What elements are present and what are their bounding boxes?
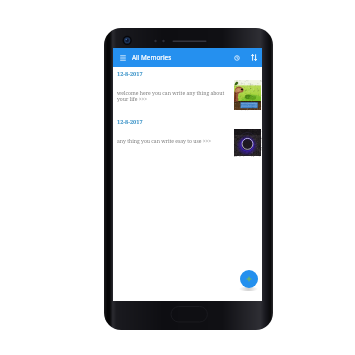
staticText: 12-8-2017 [117,118,143,126]
button[interactable]: Menu [118,53,128,63]
button[interactable]: 12-8-2017 [113,67,262,115]
staticText: welcome here you can write any thing abo… [117,90,229,103]
staticText: 12-8-2017 [117,70,143,78]
button[interactable]: 12-8-2017 [113,115,262,163]
button[interactable]: Recent [231,52,242,63]
staticText: All Memories [132,53,172,62]
button[interactable]: Add memory [240,270,258,288]
staticText: any thing you can write esay to use >>> [117,138,229,145]
button[interactable]: Sort [248,52,259,63]
